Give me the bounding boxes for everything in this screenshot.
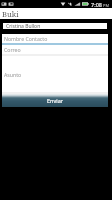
staticText: Asunto — [4, 71, 22, 78]
staticText: Enviar — [47, 97, 64, 104]
staticText: Buki — [2, 9, 19, 19]
staticText: Cristina Bullon — [6, 23, 41, 29]
staticText: Nombre Contacto — [4, 35, 48, 42]
button[interactable]: Correo — [2, 45, 108, 56]
button[interactable]: Cristina Bullon — [3, 23, 107, 29]
staticText: 7:08 — [91, 1, 102, 8]
button[interactable]: Asunto — [2, 56, 108, 94]
button[interactable]: Enviar — [2, 94, 108, 107]
staticText: Correo — [4, 46, 21, 53]
staticText: PM — [103, 3, 110, 8]
button[interactable]: Nombre Contacto — [2, 34, 108, 45]
